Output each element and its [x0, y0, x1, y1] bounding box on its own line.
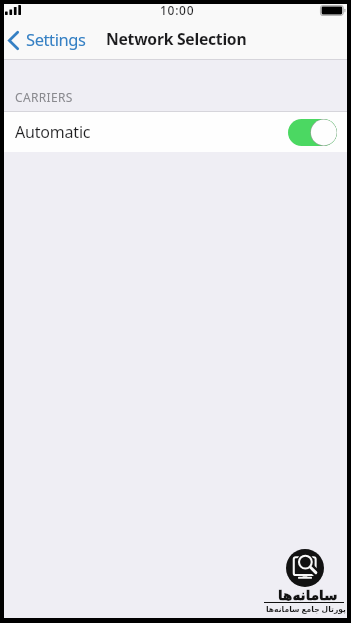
staticText: پورتال جامع سامانه‌ها [266, 604, 346, 614]
button[interactable]: Automatic [4, 112, 347, 152]
button[interactable]: Automatic carrier selection, on [288, 119, 337, 146]
staticText: Automatic [15, 121, 91, 143]
staticText: 10:00 [160, 2, 195, 18]
staticText: Network Selection [106, 28, 247, 49]
staticText: Settings [26, 28, 86, 50]
staticText: CARRIERS [15, 89, 73, 105]
button[interactable]: Settings [8, 29, 86, 51]
staticText: سامانه‌ها [278, 587, 338, 603]
